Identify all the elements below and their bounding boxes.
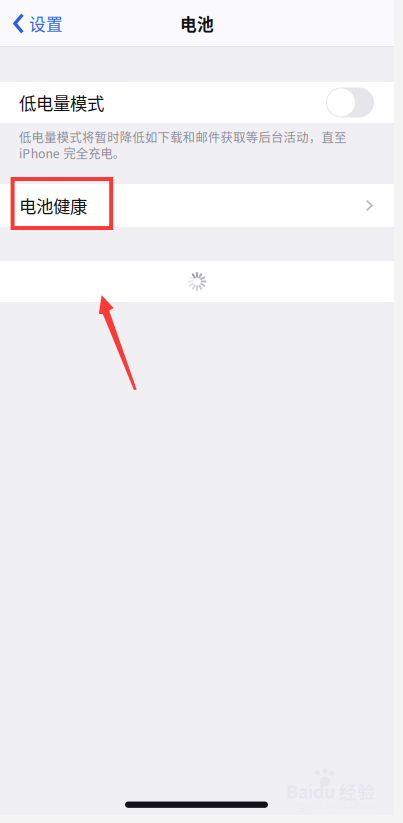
button[interactable]: 电池健康 [0, 184, 394, 227]
staticText: 电池 [180, 11, 214, 35]
staticText: Baidu 经验 [286, 778, 375, 803]
staticText: iPhone 完全充电。 [19, 144, 125, 162]
button[interactable]: 低电量模式 [0, 82, 394, 123]
button[interactable]: 低电量模式开关 [326, 87, 374, 117]
staticText: 低电量模式 [19, 90, 104, 115]
staticText: 电池健康 [19, 193, 87, 218]
button[interactable]: 返回设置 [0, 0, 73, 47]
staticText: 设置 [29, 11, 63, 35]
staticText: 低电量模式将暂时降低如下载和邮件获取等后台活动，直至 [19, 128, 346, 146]
